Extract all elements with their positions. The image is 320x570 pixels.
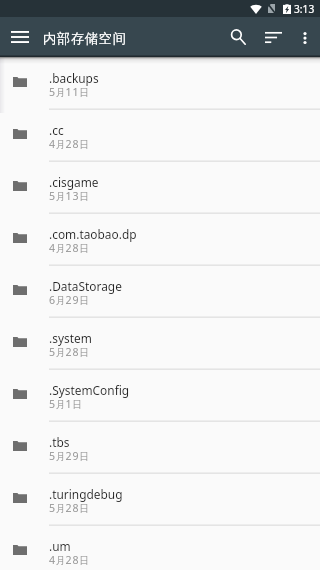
staticText: .system	[49, 330, 92, 346]
staticText: 5月29日	[49, 449, 90, 463]
button[interactable]: .SystemConfig	[0, 370, 320, 422]
staticText: 5月13日	[49, 189, 90, 203]
button[interactable]: Sort	[257, 21, 289, 53]
staticText: 3:13	[294, 2, 315, 16]
staticText: .turingdebug	[49, 486, 123, 502]
button[interactable]: Search	[222, 21, 254, 53]
button[interactable]: .com.taobao.dp	[0, 214, 320, 266]
staticText: .tbs	[49, 434, 70, 450]
button[interactable]: More options	[289, 22, 320, 53]
staticText: 6月29日	[49, 293, 90, 307]
staticText: 5月1日	[49, 397, 83, 411]
button[interactable]: .um	[0, 526, 320, 570]
button[interactable]: .tbs	[0, 422, 320, 474]
staticText: 5月28日	[49, 501, 90, 515]
staticText: .SystemConfig	[49, 382, 130, 398]
button[interactable]: .backups	[0, 58, 320, 110]
button[interactable]: .turingdebug	[0, 474, 320, 526]
staticText: .DataStorage	[49, 278, 122, 294]
button[interactable]: Menu	[4, 21, 36, 53]
staticText: 4月28日	[49, 137, 90, 151]
staticText: 4月28日	[49, 553, 90, 567]
staticText: .um	[49, 538, 71, 554]
staticText: .backups	[49, 70, 99, 86]
button[interactable]: .cc	[0, 110, 320, 162]
button[interactable]: .DataStorage	[0, 266, 320, 318]
staticText: 内部存储空间	[43, 30, 127, 47]
button[interactable]: .cisgame	[0, 162, 320, 214]
button[interactable]: .system	[0, 318, 320, 370]
staticText: 5月28日	[49, 345, 90, 359]
staticText: .cisgame	[49, 174, 99, 190]
staticText: 4月28日	[49, 241, 90, 255]
staticText: 5月11日	[49, 85, 90, 99]
staticText: .com.taobao.dp	[49, 226, 137, 242]
staticText: .cc	[49, 122, 64, 138]
